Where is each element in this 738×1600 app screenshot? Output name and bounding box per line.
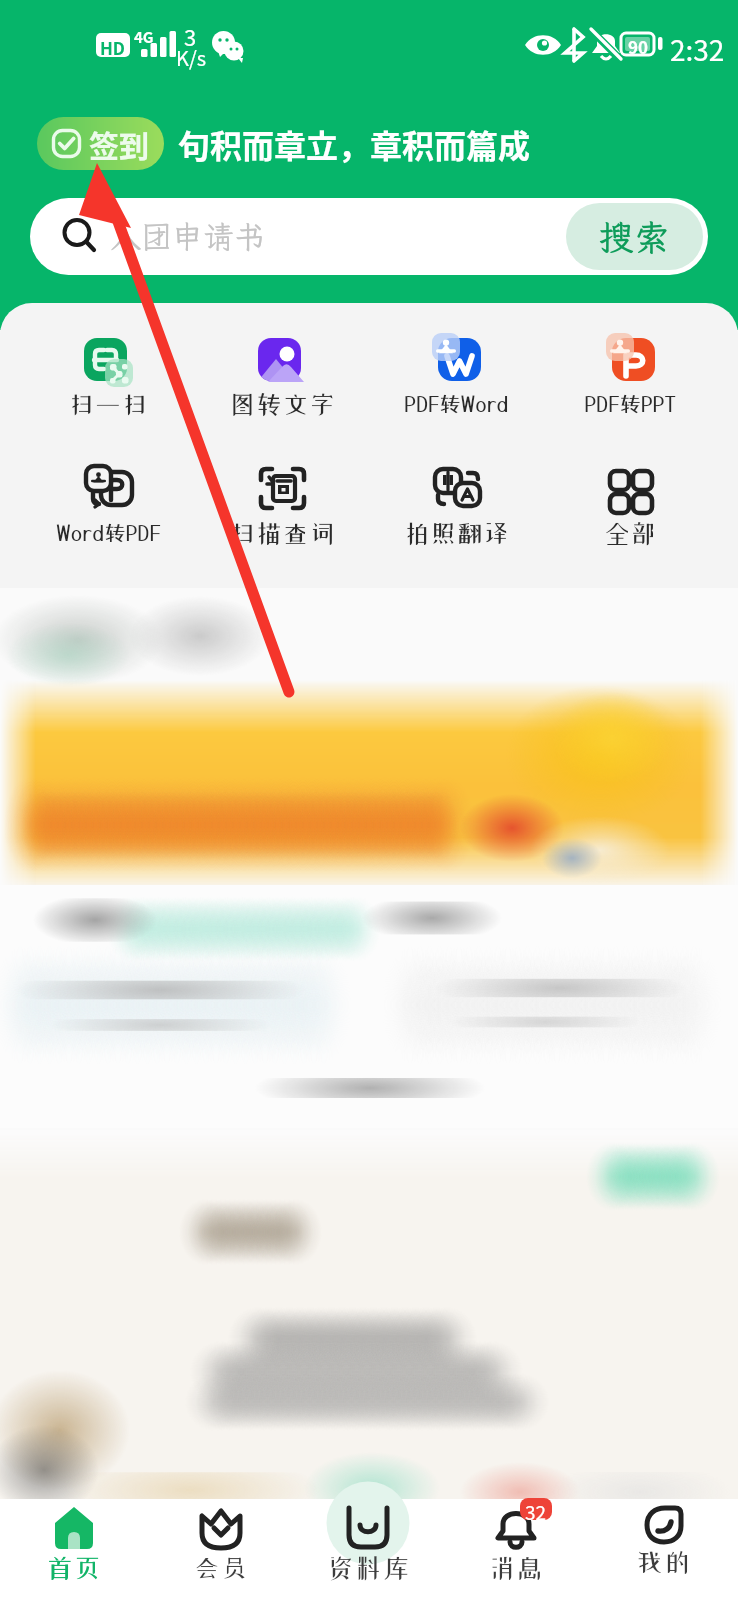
staticText: 我的: [636, 1548, 692, 1575]
button[interactable]: 扫一扫: [21, 333, 195, 417]
button[interactable]: 资料库: [294, 1499, 442, 1600]
staticText: 图转文字: [229, 391, 336, 417]
staticText: HD: [100, 35, 126, 60]
staticText: PDF转Word: [404, 391, 509, 416]
button[interactable]: 会员: [147, 1499, 294, 1600]
other: 首页: [51, 1505, 97, 1551]
button[interactable]: 消息: [442, 1499, 590, 1600]
button[interactable]: 我的: [590, 1499, 738, 1600]
staticText: Word转PDF: [56, 520, 161, 545]
staticText: K/s: [176, 43, 207, 72]
staticText: 90: [628, 34, 649, 59]
staticText: 句积而章立，章积而篇成: [178, 121, 531, 167]
staticText: 资料库: [327, 1554, 410, 1581]
button[interactable]: 拍照翻译: [369, 462, 543, 546]
button[interactable]: PDF转PPT: [543, 333, 717, 416]
other: 资料库: [345, 1505, 391, 1551]
staticText: PDF转PPT: [584, 391, 676, 416]
staticText: 入团申请书: [110, 216, 265, 257]
button[interactable]: 签到: [37, 117, 164, 170]
button[interactable]: 搜索: [566, 203, 703, 270]
staticText: 消息: [488, 1554, 544, 1581]
staticText: 拍照翻译: [403, 520, 510, 546]
button[interactable]: 扫描查词: [195, 462, 369, 546]
staticText: 扫描查词: [229, 520, 336, 546]
button[interactable]: PDF转Word: [369, 333, 543, 416]
staticText: 扫一扫: [68, 391, 148, 417]
other: 消息: [493, 1505, 539, 1551]
staticText: 签到: [89, 122, 149, 165]
button[interactable]: 入团申请书: [30, 198, 708, 275]
staticText: 3: [184, 20, 197, 52]
staticText: 搜索: [599, 214, 670, 260]
button[interactable]: 图转文字: [195, 333, 369, 417]
staticText: 全部: [603, 520, 657, 546]
staticText: 首页: [46, 1554, 102, 1581]
staticText: 32: [525, 1498, 547, 1520]
other: 会员: [198, 1505, 244, 1551]
staticText: 会员: [193, 1554, 249, 1581]
button[interactable]: Word转PDF: [21, 462, 195, 545]
button[interactable]: 首页: [0, 1499, 147, 1600]
staticText: 2:32: [670, 29, 725, 70]
button[interactable]: 全部: [543, 462, 717, 546]
staticText: 4G: [134, 26, 154, 48]
other: 我的: [644, 1505, 684, 1545]
